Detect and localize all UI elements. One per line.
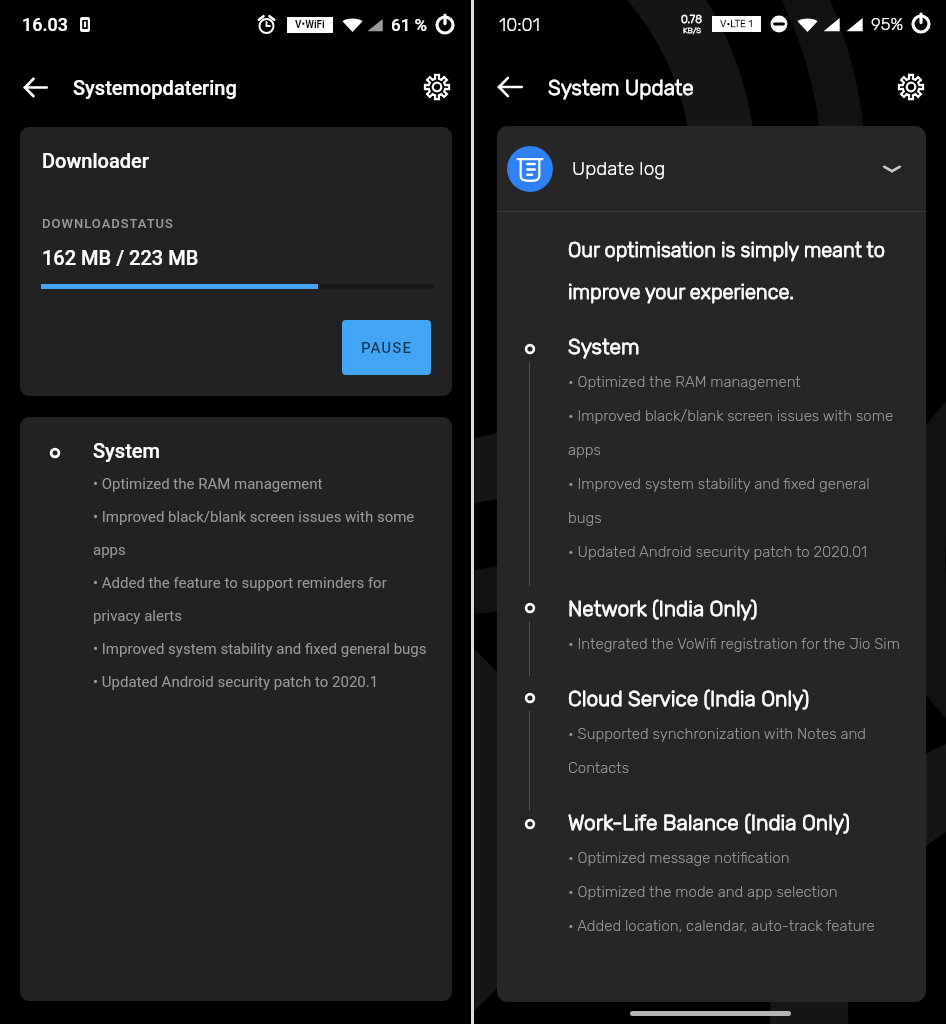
staticText: Systemopdatering <box>73 76 237 99</box>
staticText: Update log <box>572 157 666 180</box>
staticText: DOWNLOADSTATUS <box>42 216 174 231</box>
staticText: V•WiFi <box>295 19 325 31</box>
staticText: V•LTE 1 <box>720 18 753 30</box>
button[interactable]: Settings <box>898 74 924 100</box>
button[interactable]: Back <box>23 75 48 100</box>
button[interactable]: Update log <box>497 126 926 211</box>
staticText: KB/S <box>683 26 702 35</box>
staticText: Work-Life Balance (India Only) <box>568 810 850 835</box>
staticText: 162 MB / 223 MB <box>42 246 199 269</box>
staticText: • Optimized message notification • Optim… <box>568 836 875 938</box>
staticText: System Update <box>548 75 694 100</box>
button[interactable]: Back <box>497 74 523 100</box>
staticText: 0.78 <box>681 13 703 26</box>
staticText: • Optimized the RAM management • Improve… <box>568 360 902 564</box>
staticText: Downloader <box>42 149 149 172</box>
button[interactable]: Settings <box>424 74 450 100</box>
button[interactable]: PAUSE <box>342 320 431 375</box>
staticText: • Integrated the VoWifi registration for… <box>568 622 900 656</box>
staticText: • Supported synchronization with Notes a… <box>568 712 902 780</box>
staticText: 61 % <box>391 15 428 35</box>
button[interactable]: Downloader <box>20 127 452 396</box>
staticText: System <box>568 334 640 359</box>
staticText: 10:01 <box>499 14 540 35</box>
staticText: 95% <box>871 14 904 34</box>
staticText: • Optimized the RAM management • Improve… <box>93 463 435 694</box>
staticText: 16.03 <box>22 14 68 35</box>
staticText: Our optimisation is simply meant to impr… <box>568 224 906 308</box>
staticText: System <box>93 439 160 462</box>
staticText: Network (India Only) <box>568 596 758 621</box>
staticText: PAUSE <box>361 339 412 357</box>
staticText: Cloud Service (India Only) <box>568 686 810 711</box>
